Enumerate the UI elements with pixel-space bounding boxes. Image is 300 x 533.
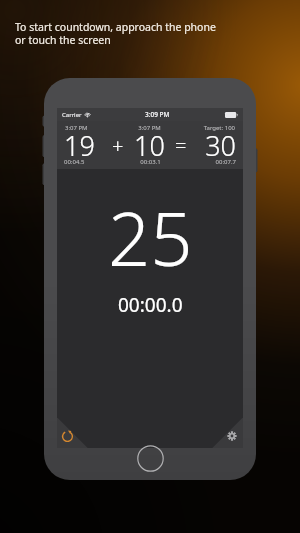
staticText: Target: 100: [178, 124, 235, 132]
staticText: 19: [64, 127, 110, 164]
button[interactable]: Reset: [60, 429, 75, 444]
staticText: 00:04.5: [64, 158, 122, 166]
staticText: 00:00.0: [118, 292, 183, 318]
button[interactable]: Settings: [224, 428, 240, 444]
staticText: 10: [126, 127, 173, 164]
staticText: To start countdown, approach the phone o…: [15, 20, 216, 47]
staticText: 3:09 PM: [145, 110, 170, 119]
button[interactable]: 25: [57, 169, 243, 448]
button[interactable]: Home: [137, 445, 164, 472]
staticText: +: [112, 132, 124, 159]
staticText: 00:03.1: [122, 158, 179, 166]
staticText: 25: [108, 187, 193, 288]
staticText: 3:07 PM: [65, 124, 121, 132]
staticText: 3:07 PM: [121, 124, 178, 132]
staticText: Carrier: [62, 111, 82, 119]
staticText: 00:07.7: [179, 158, 236, 166]
staticText: =: [175, 132, 187, 159]
staticText: 30: [189, 127, 236, 164]
